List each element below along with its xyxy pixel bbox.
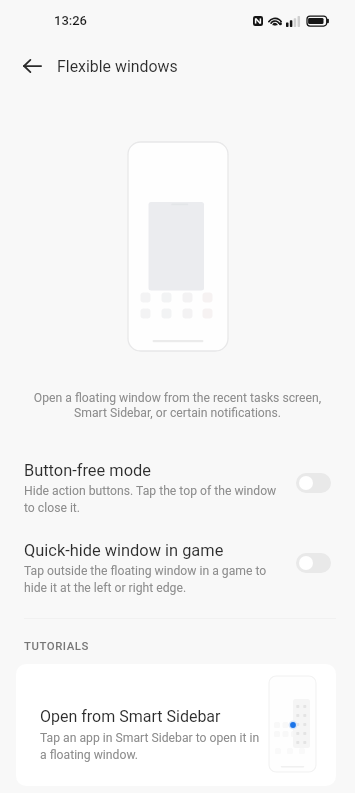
- staticText: Flexible windows: [57, 57, 178, 76]
- staticText: TUTORIALS: [24, 639, 89, 652]
- staticText: 13:26: [54, 13, 88, 28]
- button[interactable]: Back: [8, 44, 56, 92]
- staticText: Hide action buttons. Tap the top of the …: [24, 484, 277, 515]
- button[interactable]: Button-free mode: [0, 457, 355, 527]
- staticText: Open a floating window from the recent t…: [16, 391, 339, 420]
- staticText: Tap outside the floating window in a gam…: [24, 564, 267, 595]
- button[interactable]: Quick-hide window in game: [0, 537, 355, 607]
- button[interactable]: Open from Smart Sidebar: [16, 664, 336, 786]
- staticText: Open from Smart Sidebar: [40, 707, 221, 726]
- staticText: Button-free mode: [24, 461, 151, 480]
- staticText: Quick-hide window in game: [24, 541, 224, 560]
- staticText: Tap an app in Smart Sidebar to open it i…: [40, 731, 260, 762]
- button[interactable]: Toggle: [296, 553, 331, 573]
- button[interactable]: Toggle: [296, 473, 331, 493]
